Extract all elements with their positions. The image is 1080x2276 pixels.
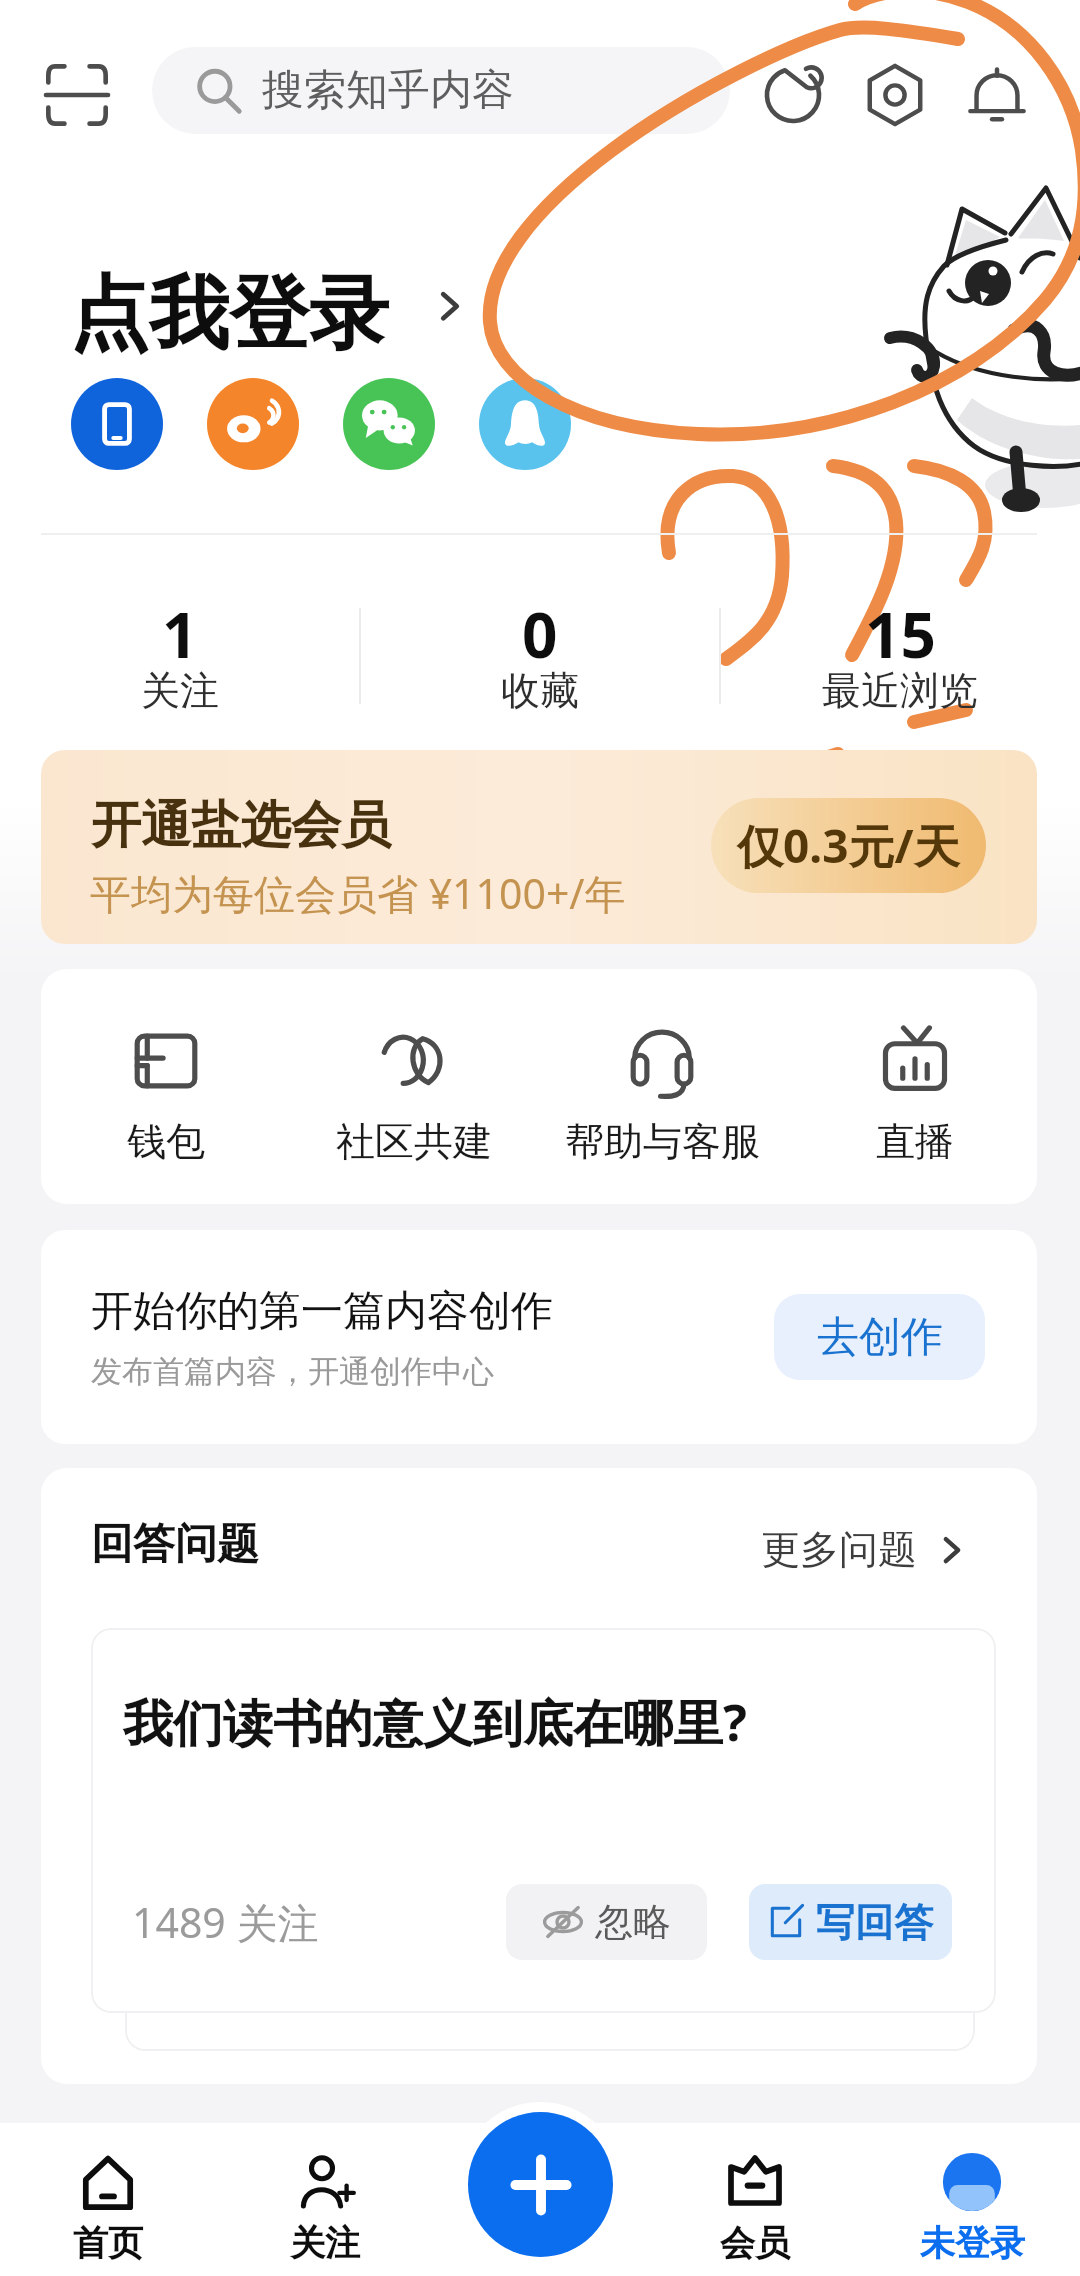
button[interactable]: 社区共建 — [289, 987, 539, 1187]
staticText: 关注 — [141, 666, 219, 715]
button[interactable]: 钱包 — [41, 987, 291, 1187]
staticText: 0 — [522, 592, 558, 676]
button[interactable]: Create post — [468, 2112, 613, 2257]
staticText: 写回答 — [816, 1898, 933, 1947]
button[interactable]: Notifications — [952, 50, 1042, 140]
staticText: 首页 — [73, 2221, 143, 2265]
button[interactable]: Settings — [850, 50, 940, 140]
button[interactable]: Login option — [479, 378, 571, 470]
button[interactable]: 点我登录 — [69, 264, 458, 365]
button[interactable]: 写回答 — [749, 1884, 952, 1960]
staticText: 钱包 — [127, 1117, 205, 1166]
button[interactable]: 开始你的第一篇内容创作 — [41, 1230, 1037, 1444]
staticText: 忽略 — [595, 1898, 671, 1946]
button[interactable]: Login option — [343, 378, 435, 470]
button[interactable]: 直播 — [790, 987, 1037, 1187]
button[interactable]: 会员 — [647, 2123, 863, 2276]
staticText: 搜索知乎内容 — [262, 64, 514, 117]
staticText: 帮助与客服 — [565, 1117, 760, 1166]
staticText: 收藏 — [501, 666, 579, 715]
button[interactable]: Login option — [207, 378, 299, 470]
button[interactable]: Login option — [71, 378, 163, 470]
staticText: 未登录 — [920, 2221, 1025, 2265]
button[interactable]: 搜索知乎内容 — [152, 47, 730, 134]
staticText: 15 — [865, 592, 936, 676]
staticText: 开始你的第一篇内容创作 — [91, 1285, 553, 1338]
button[interactable]: 1 — [0, 570, 360, 654]
staticText: 仅0.3元/天 — [737, 814, 960, 877]
staticText: 平均为每位会员省 ¥1100+/年 — [90, 865, 626, 921]
button[interactable]: 我们读书的意义到底在哪里? — [91, 1628, 996, 2013]
staticText: 社区共建 — [336, 1117, 492, 1166]
button[interactable]: 关注 — [217, 2123, 433, 2276]
staticText: 更多问题 — [761, 1525, 917, 1574]
button[interactable]: 首页 — [0, 2123, 216, 2276]
button[interactable]: 更多问题 — [761, 1516, 963, 1582]
staticText: 1 — [162, 592, 198, 676]
button[interactable]: 未登录 — [864, 2123, 1080, 2276]
staticText: 1489 关注 — [132, 1894, 319, 1950]
staticText: 会员 — [720, 2221, 790, 2265]
staticText: 回答问题 — [91, 1518, 259, 1571]
staticText: 发布首篇内容，开通创作中心 — [91, 1352, 494, 1391]
staticText: 点我登录 — [69, 264, 389, 365]
staticText: 去创作 — [817, 1311, 943, 1364]
button[interactable]: 开通盐选会员 — [41, 750, 1037, 944]
staticText: 开通盐选会员 — [91, 794, 391, 857]
button[interactable]: 忽略 — [506, 1884, 707, 1960]
button[interactable]: Scan — [34, 52, 120, 138]
staticText: 最近浏览 — [822, 666, 978, 715]
staticText: 我们读书的意义到底在哪里? — [123, 1688, 747, 1756]
staticText: 关注 — [290, 2221, 360, 2265]
button[interactable]: 帮助与客服 — [537, 987, 787, 1187]
button[interactable]: 去创作 — [774, 1294, 985, 1380]
button[interactable]: 0 — [360, 570, 720, 654]
staticText: 直播 — [876, 1117, 954, 1166]
button[interactable]: 15 — [720, 570, 1080, 654]
button[interactable]: Night mode — [748, 50, 838, 140]
button[interactable]: 仅0.3元/天 — [711, 798, 986, 893]
